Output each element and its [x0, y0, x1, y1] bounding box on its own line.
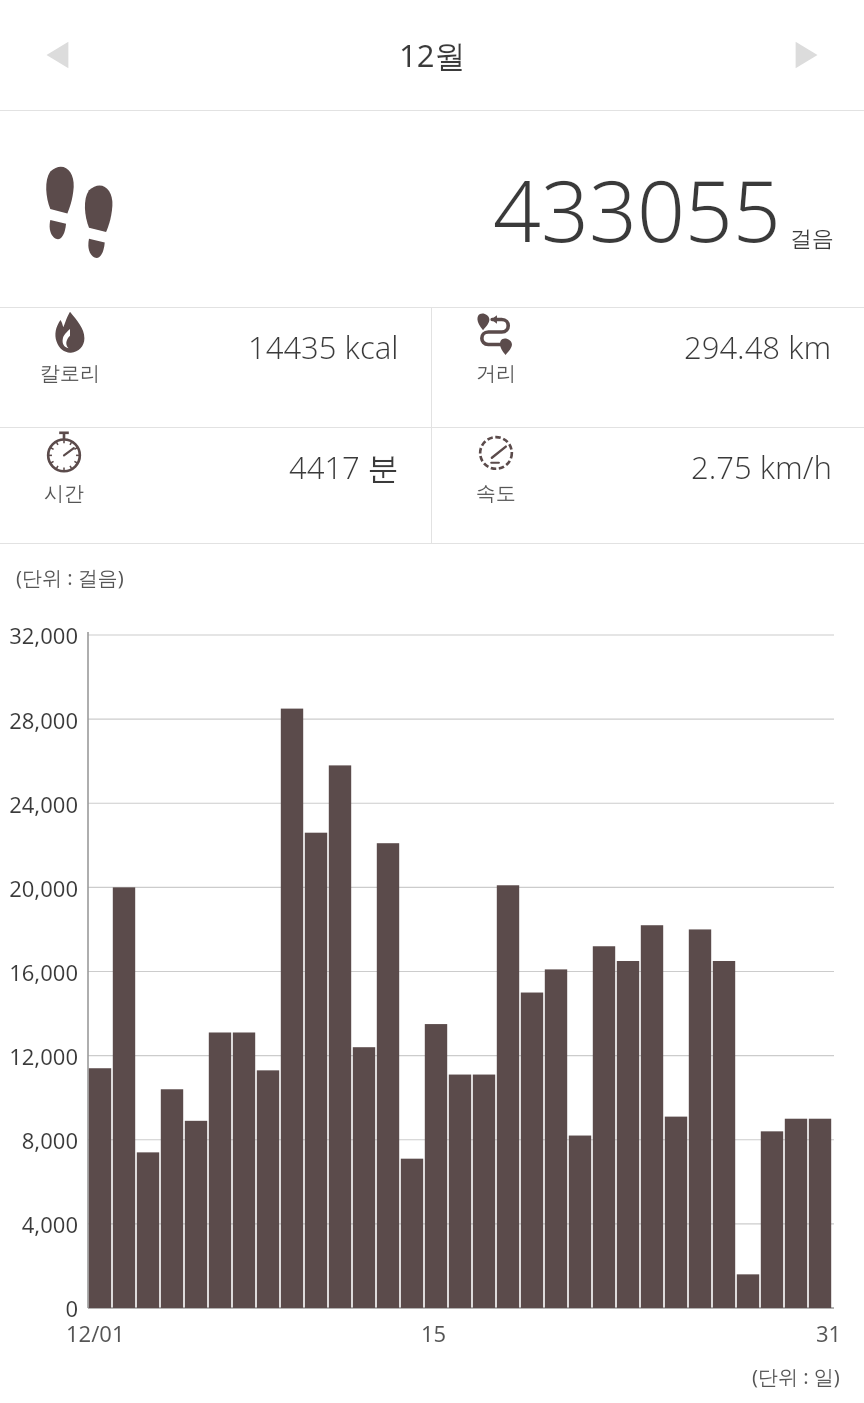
- staticText: 24,000: [0, 789, 78, 819]
- staticText: 294.48 km: [684, 326, 832, 368]
- other: Speed: [472, 428, 520, 476]
- staticText: 시간: [44, 481, 84, 506]
- button[interactable]: Calories: [0, 308, 431, 386]
- other: Calories: [46, 308, 94, 356]
- staticText: 0: [0, 1293, 78, 1323]
- staticText: 칼로리: [40, 361, 100, 386]
- other: Distance: [472, 308, 520, 356]
- button[interactable]: Previous month: [30, 25, 90, 85]
- staticText: 2.75 km/h: [691, 446, 832, 488]
- button[interactable]: Distance: [432, 308, 864, 386]
- button[interactable]: Speed: [432, 428, 864, 506]
- staticText: 속도: [476, 481, 516, 506]
- staticText: (단위 : 걸음): [16, 564, 124, 591]
- staticText: 8,000: [0, 1125, 78, 1155]
- staticText: 12,000: [0, 1041, 78, 1071]
- staticText: 16,000: [0, 957, 78, 987]
- staticText: 거리: [476, 361, 516, 386]
- staticText: (단위 : 일): [752, 1363, 840, 1390]
- button[interactable]: Time: [0, 428, 431, 506]
- staticText: 12/01: [66, 1318, 125, 1348]
- button[interactable]: 433055: [0, 111, 864, 307]
- staticText: 31: [816, 1318, 842, 1348]
- staticText: 15: [421, 1318, 447, 1348]
- staticText: 14435 kcal: [248, 326, 399, 368]
- button[interactable]: Next month: [774, 25, 834, 85]
- staticText: 28,000: [0, 705, 78, 735]
- staticText: 걸음: [790, 225, 834, 253]
- staticText: 20,000: [0, 873, 78, 903]
- staticText: 4,000: [0, 1209, 78, 1239]
- staticText: 12월: [399, 34, 466, 76]
- staticText: 4417 분: [289, 446, 399, 488]
- staticText: 433055: [493, 152, 781, 266]
- staticText: 32,000: [0, 620, 78, 650]
- other: Time: [40, 428, 88, 476]
